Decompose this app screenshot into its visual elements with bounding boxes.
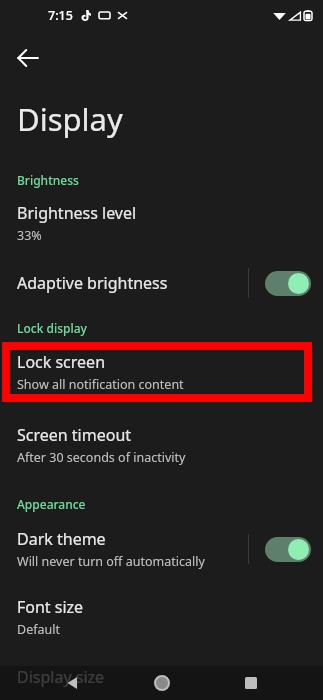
staticText: 7:15 bbox=[48, 7, 73, 24]
staticText: Default bbox=[17, 621, 60, 638]
staticText: Brightness level bbox=[17, 202, 137, 224]
button[interactable]: Adaptive brightness bbox=[0, 264, 323, 302]
button[interactable]: Recent apps bbox=[234, 666, 268, 700]
staticText: Lock display bbox=[17, 320, 87, 336]
button[interactable]: Screen timeout bbox=[0, 420, 323, 470]
staticText: Lock screen bbox=[17, 351, 106, 373]
staticText: Appearance bbox=[17, 496, 86, 512]
button[interactable]: Lock screen bbox=[0, 342, 323, 402]
staticText: Adaptive brightness bbox=[17, 272, 168, 294]
staticText: Brightness bbox=[17, 172, 79, 188]
button[interactable]: Dark theme bbox=[0, 524, 323, 574]
button[interactable]: Brightness level bbox=[0, 198, 323, 248]
button[interactable]: Back bbox=[55, 666, 89, 700]
staticText: Will never turn off automatically bbox=[17, 553, 205, 570]
staticText: Screen timeout bbox=[17, 424, 132, 446]
staticText: Dark theme bbox=[17, 528, 106, 550]
staticText: Display size bbox=[17, 666, 105, 688]
button[interactable]: Font size bbox=[0, 592, 323, 642]
staticText: Font size bbox=[17, 596, 84, 618]
staticText: After 30 seconds of inactivity bbox=[17, 449, 186, 466]
button[interactable]: Back bbox=[6, 36, 50, 80]
button[interactable]: Adaptive brightness toggle bbox=[263, 269, 311, 297]
staticText: Display bbox=[17, 98, 123, 140]
button[interactable]: Dark theme toggle bbox=[263, 535, 311, 563]
button[interactable]: Home bbox=[145, 666, 179, 700]
staticText: 33% bbox=[17, 227, 42, 244]
staticText: Show all notification content bbox=[17, 376, 184, 393]
